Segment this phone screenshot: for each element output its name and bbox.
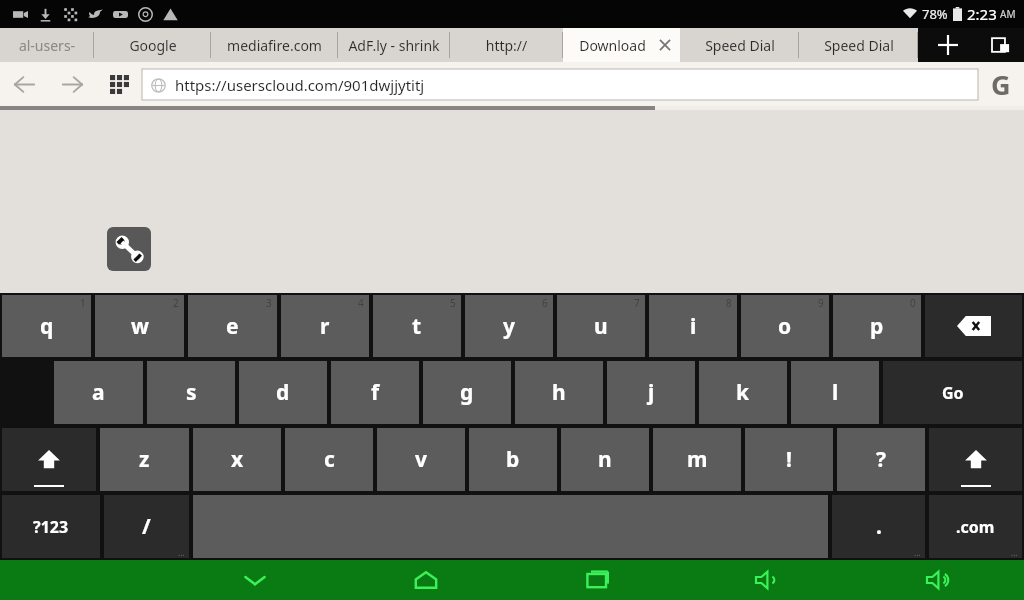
button[interactable]: Google <box>94 28 211 62</box>
staticText: z <box>139 445 150 474</box>
button[interactable]: Close tab <box>656 36 674 54</box>
button[interactable]: / <box>104 495 189 558</box>
staticText: AdF.ly - shrink <box>348 36 440 55</box>
button[interactable]: Go <box>883 361 1022 424</box>
button[interactable]: g <box>423 361 511 424</box>
button[interactable]: l <box>791 361 879 424</box>
staticText: AM <box>1000 7 1016 21</box>
button[interactable]: .com <box>929 495 1022 558</box>
button[interactable]: x <box>193 428 281 491</box>
button[interactable]: Shift <box>2 428 96 491</box>
button[interactable]: AdF.ly - shrink <box>338 28 450 62</box>
button[interactable]: i <box>649 295 737 357</box>
button[interactable]: Speed Dial <box>680 28 799 62</box>
button[interactable]: a <box>54 361 143 424</box>
button[interactable]: Backspace <box>925 295 1022 357</box>
staticText: x <box>231 445 244 474</box>
staticText: ... <box>178 547 185 558</box>
button[interactable]: Tab manager <box>978 28 1024 62</box>
staticText: a <box>92 378 105 407</box>
staticText: G <box>991 66 1011 103</box>
staticText: g <box>460 378 474 407</box>
staticText: al-users-win <box>8 36 86 55</box>
staticText: l <box>832 378 839 407</box>
button[interactable]: Hide keyboard <box>170 560 340 600</box>
staticText: 2:23 <box>967 4 997 24</box>
staticText: 8 <box>726 296 732 310</box>
button[interactable]: k <box>699 361 787 424</box>
staticText: 78% <box>922 5 948 23</box>
button[interactable]: Forward <box>48 62 96 106</box>
button[interactable]: p <box>833 295 921 357</box>
staticText: n <box>598 445 612 474</box>
staticText: i <box>690 312 697 341</box>
staticText: e <box>226 312 239 341</box>
button[interactable]: ?123 <box>2 495 100 558</box>
staticText: v <box>415 445 427 474</box>
staticText: 4 <box>358 296 364 310</box>
button[interactable]: Volume up <box>853 560 1024 600</box>
button[interactable]: Volume down <box>682 560 853 600</box>
button[interactable]: e <box>188 295 277 357</box>
button[interactable]: Search <box>978 62 1024 106</box>
button[interactable]: m <box>653 428 741 491</box>
staticText: 7 <box>634 296 640 310</box>
button[interactable]: mediafire.com <box>211 28 338 62</box>
staticText: ... <box>1011 547 1018 558</box>
button[interactable]: r <box>281 295 369 357</box>
button[interactable]: j <box>607 361 695 424</box>
staticText: q <box>40 312 54 341</box>
button[interactable]: ? <box>837 428 925 491</box>
staticText: u <box>594 312 608 341</box>
button[interactable]: s <box>147 361 235 424</box>
staticText: / <box>142 512 151 541</box>
staticText: . <box>876 512 882 541</box>
button[interactable]: Download <box>563 28 680 62</box>
button[interactable]: n <box>561 428 649 491</box>
button[interactable]: b <box>469 428 557 491</box>
button[interactable]: z <box>100 428 189 491</box>
button[interactable]: Apps <box>96 62 142 106</box>
button[interactable]: Speed Dial <box>799 28 918 62</box>
staticText: Speed Dial <box>824 36 894 55</box>
button[interactable]: d <box>239 361 327 424</box>
button[interactable]: o <box>741 295 829 357</box>
button[interactable]: Broken image <box>107 227 151 271</box>
staticText: 9 <box>818 296 824 310</box>
staticText: d <box>276 378 290 407</box>
button[interactable]: h <box>515 361 603 424</box>
button[interactable]: Home <box>340 560 511 600</box>
staticText: b <box>506 445 520 474</box>
button[interactable]: al-users-win <box>0 28 94 62</box>
staticText: .com <box>956 516 995 538</box>
button[interactable]: q <box>2 295 91 357</box>
button[interactable]: v <box>377 428 465 491</box>
button[interactable]: c <box>285 428 373 491</box>
staticText: https://userscloud.com/901dwjjytitj <box>175 75 425 95</box>
button[interactable]: Shift <box>929 428 1022 491</box>
staticText: o <box>778 312 792 341</box>
staticText: ? <box>876 445 887 474</box>
button[interactable]: f <box>331 361 419 424</box>
button[interactable]: w <box>95 295 184 357</box>
button[interactable]: . <box>832 495 925 558</box>
staticText: http://c.cldlr.co <box>458 36 555 55</box>
button[interactable]: u <box>557 295 645 357</box>
button[interactable]: ! <box>745 428 833 491</box>
staticText: f <box>371 378 380 407</box>
button[interactable]: Back <box>0 62 48 106</box>
staticText: y <box>503 312 515 341</box>
staticText: r <box>320 312 330 341</box>
staticText: Download <box>579 36 646 55</box>
button[interactable]: y <box>465 295 553 357</box>
staticText: Go <box>942 382 964 404</box>
button[interactable]: New tab <box>918 28 978 62</box>
button[interactable]: https://userscloud.com/901dwjjytitj <box>142 69 978 100</box>
button[interactable]: t <box>373 295 461 357</box>
button[interactable]: Recents <box>511 560 682 600</box>
staticText: Speed Dial <box>705 36 775 55</box>
staticText: j <box>648 378 655 407</box>
button[interactable]: http://c.cldlr.co <box>450 28 563 62</box>
